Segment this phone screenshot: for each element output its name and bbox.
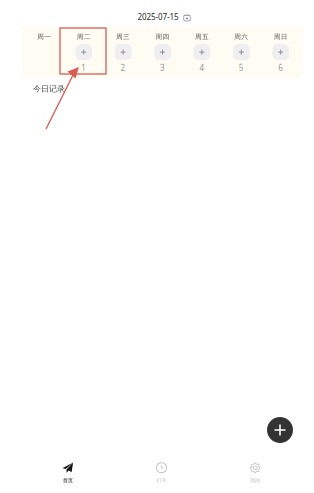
staticText: 周六 — [234, 33, 248, 41]
staticText: 周二 — [77, 33, 91, 41]
button[interactable]: 周五 — [182, 27, 222, 78]
button[interactable]: 新增记录 — [267, 417, 293, 443]
staticText: 周四 — [155, 33, 169, 41]
staticText: 周日 — [274, 33, 288, 41]
button[interactable]: 周六 — [222, 27, 261, 78]
button[interactable]: 周三 — [103, 27, 143, 78]
button[interactable]: 我的 — [208, 457, 302, 489]
staticText: 今日记录 — [33, 84, 65, 94]
staticText: 3 — [160, 62, 165, 73]
staticText: 周一 — [37, 33, 51, 41]
staticText: 周三 — [116, 33, 130, 41]
staticText: 打卡 — [156, 477, 166, 484]
button[interactable]: 首页 — [21, 457, 115, 489]
button[interactable]: 周日 — [261, 27, 300, 78]
staticText: 4 — [199, 62, 204, 73]
button[interactable]: 周二 — [64, 27, 103, 78]
staticText: 首页 — [63, 477, 73, 484]
staticText: 2 — [121, 62, 126, 73]
button[interactable]: 选择日期 — [183, 11, 190, 23]
staticText: 2025-07-15 — [137, 12, 179, 22]
button[interactable]: 打卡 — [115, 457, 208, 489]
staticText: 周五 — [195, 33, 209, 41]
staticText: 1 — [81, 62, 86, 73]
staticText: 我的 — [250, 477, 260, 484]
staticText: 5 — [239, 62, 244, 73]
staticText: 6 — [278, 62, 283, 73]
button[interactable]: 周四 — [143, 27, 182, 78]
button[interactable]: 周一 — [25, 27, 64, 78]
